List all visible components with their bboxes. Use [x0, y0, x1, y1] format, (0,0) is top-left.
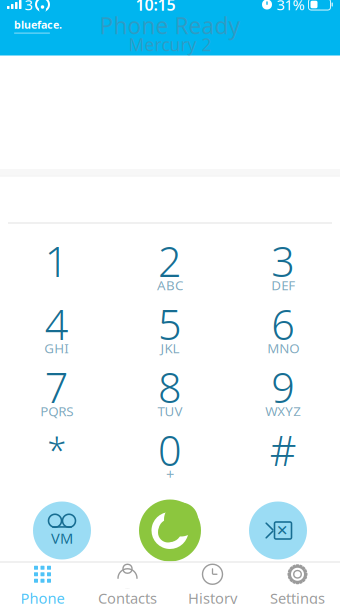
button[interactable]: 6: [227, 298, 340, 361]
button[interactable]: Settings: [255, 562, 340, 604]
staticText: 2: [158, 234, 182, 288]
staticText: 6: [271, 297, 295, 351]
staticText: VM: [51, 528, 73, 548]
staticText: *: [47, 427, 66, 473]
staticText: MNO: [267, 339, 299, 357]
staticText: GHI: [44, 339, 69, 357]
staticText: Settings: [270, 588, 325, 604]
staticText: WXYZ: [265, 402, 301, 420]
staticText: Phone: [20, 588, 64, 604]
staticText: JKL: [160, 339, 179, 357]
button[interactable]: 9: [227, 361, 340, 424]
button[interactable]: 0: [113, 424, 227, 487]
button[interactable]: Voicemail: [8, 501, 116, 559]
staticText: Phone Ready: [99, 10, 240, 40]
staticText: 31%: [276, 0, 304, 14]
button[interactable]: 1: [0, 235, 113, 298]
staticText: 1: [45, 234, 69, 288]
button[interactable]: History: [170, 562, 255, 604]
staticText: 3: [24, 0, 32, 14]
staticText: 9: [271, 360, 295, 414]
staticText: 8: [158, 360, 182, 414]
button[interactable]: #: [227, 424, 340, 487]
staticText: 4: [45, 297, 69, 351]
staticText: Contacts: [98, 588, 157, 604]
button[interactable]: Contacts: [85, 562, 170, 604]
staticText: TUV: [157, 402, 182, 420]
button[interactable]: Call: [116, 499, 224, 561]
staticText: ✕: [276, 522, 288, 539]
staticText: 10:15: [135, 0, 175, 15]
staticText: DEF: [271, 276, 295, 294]
staticText: 7: [45, 360, 69, 414]
staticText: PQRS: [40, 402, 73, 420]
button[interactable]: 7: [0, 361, 113, 424]
button[interactable]: *: [0, 424, 113, 487]
staticText: 0: [158, 423, 182, 477]
button[interactable]: 4: [0, 298, 113, 361]
staticText: 5: [158, 297, 182, 351]
staticText: Mercury 2: [128, 33, 211, 56]
button[interactable]: 5: [113, 298, 227, 361]
button[interactable]: 2: [113, 235, 227, 298]
staticText: +: [166, 464, 174, 484]
button[interactable]: 8: [113, 361, 227, 424]
staticText: 3: [271, 234, 295, 288]
button[interactable]: Phone: [0, 562, 85, 604]
button[interactable]: 3: [227, 235, 340, 298]
staticText: blueface.: [14, 17, 62, 32]
staticText: ABC: [157, 276, 183, 294]
staticText: #: [270, 423, 297, 477]
staticText: History: [188, 588, 237, 604]
button[interactable]: Delete: [224, 501, 332, 559]
